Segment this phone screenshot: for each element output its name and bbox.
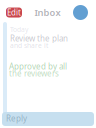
staticText: Edit [7,7,21,18]
staticText: Inbox [34,6,60,19]
button[interactable]: Edit [6,7,22,17]
staticText: Today [10,25,28,34]
staticText: Review the plan [10,33,68,44]
staticText: the reviewers [9,68,59,79]
staticText: and share it [10,41,48,50]
staticText: Reply [6,113,27,124]
button[interactable]: Profile [73,5,88,20]
staticText: Approved by all [9,61,67,72]
